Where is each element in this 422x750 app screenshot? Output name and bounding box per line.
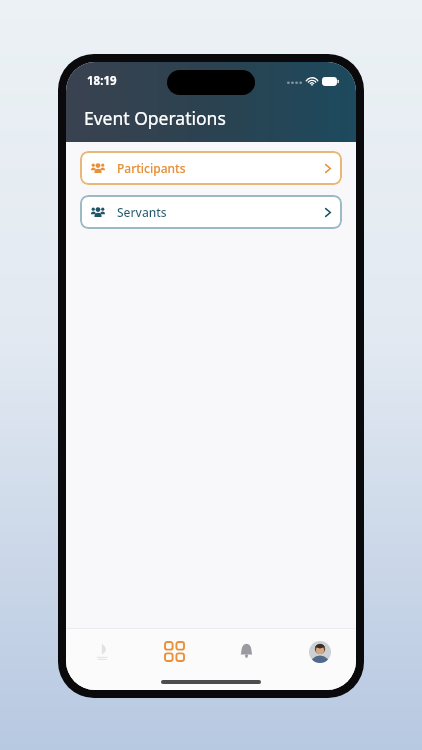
button[interactable]: Home <box>66 629 138 674</box>
button[interactable]: Profile <box>283 629 356 674</box>
staticText: Servants <box>117 204 167 220</box>
button[interactable]: Notifications <box>210 629 283 674</box>
button[interactable]: Servants <box>80 195 342 229</box>
button[interactable]: Participants <box>80 151 342 185</box>
button[interactable]: Apps <box>138 629 210 674</box>
staticText: Event Operations <box>84 106 226 130</box>
staticText: Participants <box>117 160 186 176</box>
staticText: 18:19 <box>87 73 117 89</box>
